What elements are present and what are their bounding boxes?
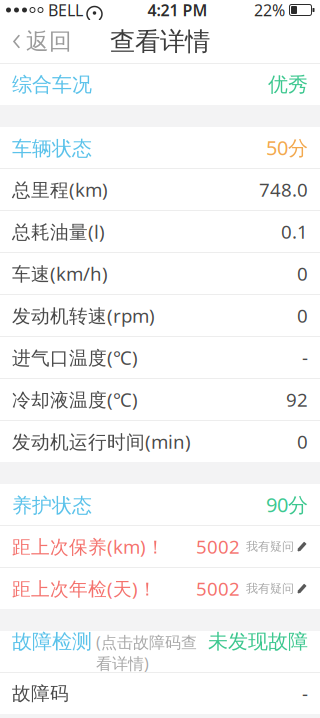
staticText: 养护状态 — [12, 493, 92, 518]
staticText: 我有疑问 — [246, 539, 294, 554]
staticText: 返回 — [26, 28, 72, 55]
staticText: 冷却液温度(℃) — [12, 387, 138, 412]
staticText: 查看详情 — [110, 26, 210, 57]
staticText: 距上次保养(km)！ — [12, 534, 165, 559]
staticText: BELL — [48, 0, 83, 21]
staticText: 发动机运行时间(min) — [12, 429, 191, 454]
staticText: (点击故障码查看详情) — [96, 631, 197, 674]
staticText: 我有疑问 — [246, 581, 294, 596]
staticText: 故障检测 — [12, 629, 92, 654]
staticText: 车辆状态 — [12, 136, 92, 161]
staticText: 未发现故障 — [208, 629, 308, 654]
staticText: 距上次年检(天)！ — [12, 576, 157, 601]
staticText: 92 — [286, 387, 308, 412]
staticText: 5002 — [196, 534, 240, 559]
staticText: 车速(km/h) — [12, 261, 108, 286]
staticText: 22% — [254, 0, 285, 21]
staticText: 0 — [297, 429, 308, 454]
staticText: 0 — [297, 261, 308, 286]
staticText: 4:21 PM — [147, 0, 207, 21]
button[interactable]: 返回 — [0, 20, 82, 63]
staticText: 5002 — [196, 576, 240, 601]
staticText: 优秀 — [268, 72, 308, 97]
staticText: 发动机转速(rpm) — [12, 303, 155, 328]
staticText: 90分 — [266, 491, 308, 518]
staticText: 综合车况 — [12, 72, 92, 97]
button[interactable]: 距上次保养(km)！ — [0, 526, 320, 567]
staticText: 0 — [297, 303, 308, 328]
staticText: - — [302, 345, 308, 370]
staticText: 0.1 — [281, 219, 308, 244]
staticText: 748.0 — [259, 177, 308, 202]
staticText: 50分 — [266, 134, 308, 161]
staticText: 进气口温度(℃) — [12, 345, 138, 370]
staticText: 故障码 — [12, 682, 69, 705]
staticText: 总耗油量(l) — [12, 219, 105, 244]
staticText: - — [302, 681, 308, 706]
button[interactable]: 距上次年检(天)！ — [0, 568, 320, 609]
staticText: 总里程(km) — [12, 177, 108, 202]
